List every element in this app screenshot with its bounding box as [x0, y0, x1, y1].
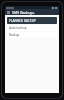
button[interactable]: Navigate up	[6, 10, 11, 15]
button[interactable]: Backup	[7, 32, 57, 38]
staticText: SMS Backup+	[12, 10, 35, 15]
button[interactable]: PLANNED	[7, 17, 57, 24]
button[interactable]: SMS Backup+	[12, 9, 58, 15]
staticText: Auto backup	[9, 26, 27, 30]
staticText: BACKUP	[24, 19, 36, 23]
button[interactable]: Auto backup	[7, 25, 57, 31]
staticText: Backup	[9, 33, 20, 37]
staticText: PLANNED	[9, 19, 23, 23]
